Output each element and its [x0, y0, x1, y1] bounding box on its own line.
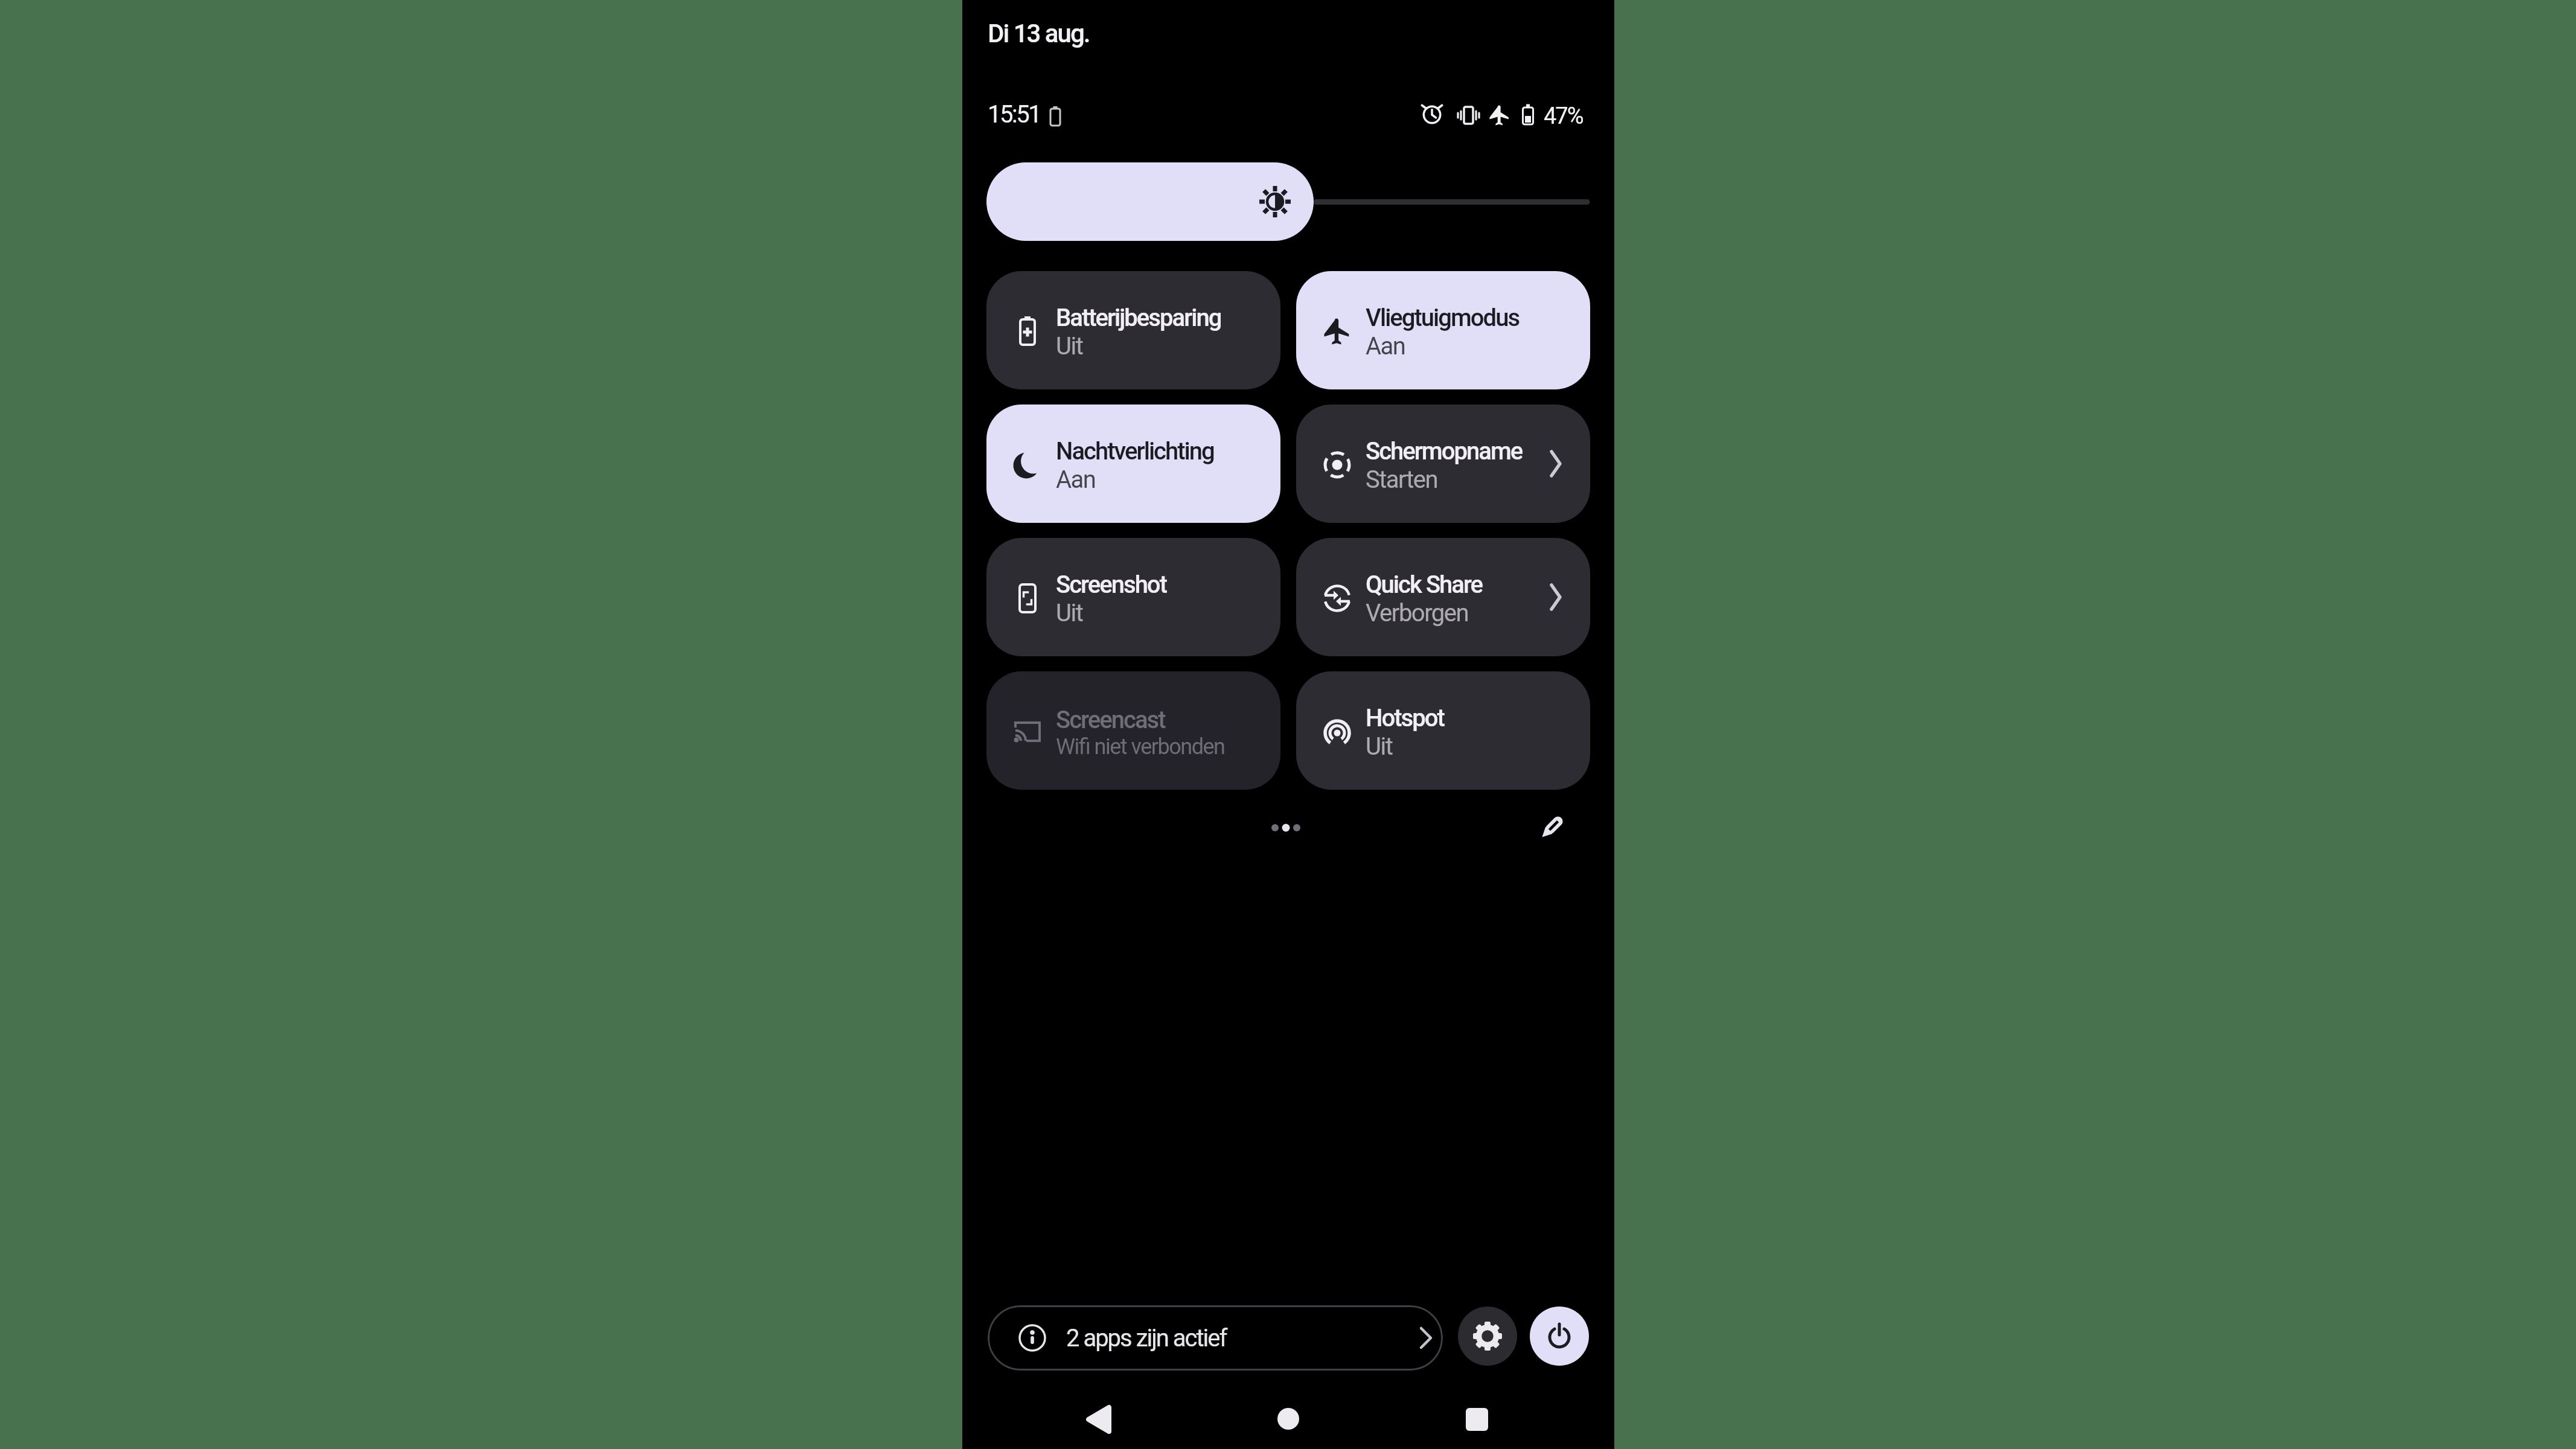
staticText: Aan	[1056, 465, 1096, 494]
staticText: Nachtverlichting	[1056, 437, 1214, 465]
button[interactable]	[1537, 813, 1566, 842]
staticText: Di 13 aug.	[988, 19, 1090, 48]
button[interactable]	[1530, 1307, 1589, 1366]
staticText: Wifi niet verbonden	[1056, 734, 1225, 760]
staticText: Uit	[1056, 599, 1083, 627]
button[interactable]	[1077, 1398, 1119, 1441]
button[interactable]: 2 apps zijn actief	[988, 1305, 1443, 1371]
staticText: Starten	[1366, 465, 1438, 494]
staticText: Uit	[1366, 732, 1393, 761]
staticText: 2 apps zijn actief	[1066, 1324, 1227, 1352]
staticText: Quick Share	[1366, 571, 1483, 599]
staticText: Uit	[1056, 332, 1083, 360]
button[interactable]	[1267, 1398, 1309, 1440]
staticText: Screencast	[1056, 706, 1165, 734]
staticText: Screenshot	[1056, 571, 1166, 599]
staticText: Verborgen	[1366, 599, 1469, 627]
button[interactable]: Schermopname	[1296, 405, 1590, 523]
button[interactable]: Batterijbesparing	[986, 271, 1280, 389]
button[interactable]: Vliegtuigmodus	[1296, 271, 1590, 389]
button[interactable]: Screenshot	[986, 538, 1280, 656]
button[interactable]	[1458, 1307, 1517, 1366]
staticText: Vliegtuigmodus	[1366, 304, 1520, 332]
button[interactable]: Nachtverlichting	[986, 405, 1280, 523]
button[interactable]	[1456, 1398, 1498, 1441]
staticText: 47%	[1544, 103, 1583, 130]
button[interactable]: Screencast	[986, 671, 1280, 790]
staticText: 15:51	[988, 100, 1041, 129]
staticText: Aan	[1366, 332, 1405, 360]
button[interactable]: Quick Share	[1296, 538, 1590, 656]
button[interactable]	[986, 162, 1314, 241]
button[interactable]: Hotspot	[1296, 671, 1590, 790]
staticText: Hotspot	[1366, 704, 1444, 732]
staticText: Batterijbesparing	[1056, 304, 1221, 332]
staticText: Schermopname	[1366, 437, 1523, 465]
